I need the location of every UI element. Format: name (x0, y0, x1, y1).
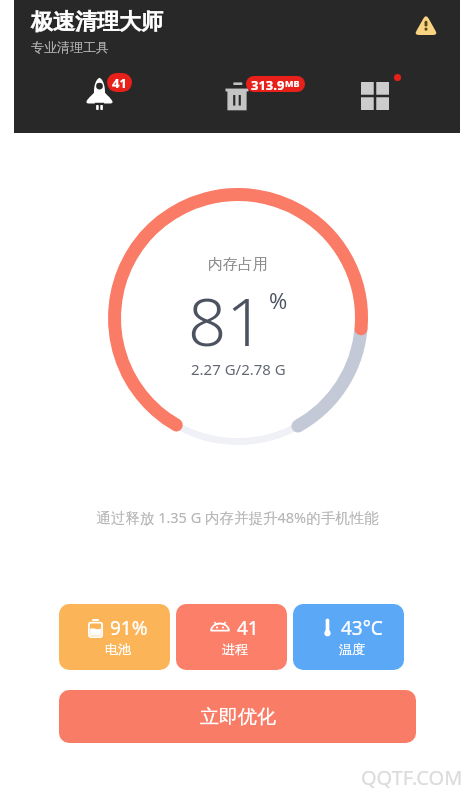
staticText: 极速清理大师 (31, 8, 163, 36)
staticText: 通过释放 1.35 G 内存并提升48%的手机性能 (0, 507, 475, 527)
button[interactable]: 91% (59, 604, 170, 670)
button[interactable]: Boost (86, 77, 113, 110)
staticText: QQTF.COM (361, 764, 463, 791)
staticText: 91% (110, 615, 148, 641)
staticText: 温度 (339, 641, 365, 657)
staticText: 专业清理工具 (31, 39, 109, 55)
staticText: MB (285, 77, 300, 89)
button[interactable]: 43°C (293, 604, 404, 670)
button[interactable]: 立即优化 (59, 690, 416, 743)
staticText: 81 (188, 274, 265, 365)
staticText: 43°C (341, 615, 383, 641)
staticText: 41 (237, 615, 259, 641)
staticText: % (269, 285, 288, 315)
staticText: 41 (112, 74, 127, 92)
staticText: 313.9 (251, 76, 285, 92)
button[interactable]: Clean (225, 77, 284, 111)
staticText: 2.27 G/2.78 G (191, 359, 286, 379)
staticText: 进程 (222, 641, 248, 657)
staticText: 内存占用 (208, 255, 268, 274)
button[interactable]: Warning (410, 8, 442, 40)
button[interactable]: Apps (361, 82, 389, 110)
staticText: 电池 (105, 641, 131, 657)
staticText: 立即优化 (200, 705, 276, 729)
button[interactable]: 41 (176, 604, 287, 670)
